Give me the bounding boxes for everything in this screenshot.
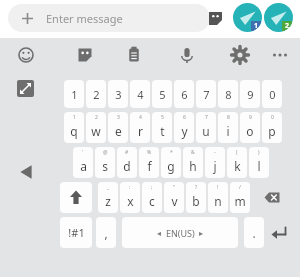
staticText: d xyxy=(123,158,131,174)
staticText: 3 xyxy=(115,87,122,102)
button[interactable]: Shift xyxy=(60,182,92,213)
staticText: EN(US) xyxy=(166,227,195,239)
staticText: 4 xyxy=(139,114,142,121)
button[interactable]: 9 xyxy=(240,80,260,108)
staticText: n xyxy=(214,193,222,209)
button[interactable]: 8 xyxy=(218,80,238,108)
button[interactable]: 0 xyxy=(262,80,282,108)
button[interactable]: More options xyxy=(266,41,294,69)
button[interactable]: 8 xyxy=(218,112,238,143)
button[interactable]: 7 xyxy=(196,80,216,108)
button[interactable]: 6 xyxy=(174,112,194,143)
button[interactable]: / xyxy=(230,182,250,213)
button[interactable]: , xyxy=(96,217,116,248)
staticText: Enter message xyxy=(46,11,123,26)
staticText: e xyxy=(115,123,122,139)
staticText: a xyxy=(80,158,87,174)
staticText: s xyxy=(102,158,108,174)
staticText: ? xyxy=(195,184,198,191)
button[interactable]: Settings xyxy=(226,41,254,69)
button[interactable]: 9 xyxy=(240,112,260,143)
staticText: u xyxy=(202,123,210,139)
button[interactable]: !#1 xyxy=(60,217,92,248)
button[interactable]: 3 xyxy=(108,112,128,143)
staticText: t xyxy=(160,123,165,139)
button[interactable]: Backspace xyxy=(256,182,288,213)
button[interactable]: 1 xyxy=(64,80,84,108)
button[interactable]: Send message 2 xyxy=(264,3,293,32)
button[interactable]: Resize keyboard xyxy=(17,80,34,97)
button[interactable]: 2 xyxy=(86,80,106,108)
button[interactable]: 6 xyxy=(174,80,194,108)
staticText: 8 xyxy=(227,114,230,121)
button[interactable]: - xyxy=(205,147,225,178)
button[interactable]: Clipboard xyxy=(120,41,148,69)
button[interactable]: ! xyxy=(208,182,228,213)
staticText: 1 xyxy=(71,87,78,102)
button[interactable]: 0 xyxy=(262,112,282,143)
staticText: . xyxy=(252,225,256,241)
button[interactable]: & xyxy=(183,147,203,178)
button[interactable]: 5 xyxy=(152,80,172,108)
button[interactable]: 3 xyxy=(108,80,128,108)
button[interactable]: 1 xyxy=(64,112,84,143)
staticText: * xyxy=(170,149,173,156)
button[interactable]: ; xyxy=(142,182,162,213)
button[interactable]: 4 xyxy=(130,80,150,108)
staticText: i xyxy=(226,123,230,139)
staticText: 6 xyxy=(181,87,188,102)
staticText: 1 xyxy=(73,114,76,121)
staticText: c xyxy=(149,193,155,209)
button[interactable]: " xyxy=(164,182,184,213)
staticText: 2 xyxy=(93,87,100,102)
staticText: m xyxy=(234,193,246,209)
button[interactable]: Enter message xyxy=(8,4,210,32)
staticText: g xyxy=(167,158,175,174)
button[interactable]: : xyxy=(120,182,140,213)
button[interactable]: Enter xyxy=(266,217,292,248)
button[interactable]: 4 xyxy=(130,112,150,143)
button[interactable]: 5 xyxy=(152,112,172,143)
button[interactable]: _ xyxy=(98,182,118,213)
button[interactable]: 7 xyxy=(196,112,216,143)
button[interactable]: Send message 1 xyxy=(233,3,262,32)
staticText: l xyxy=(257,158,261,174)
button[interactable]: @ xyxy=(95,147,115,178)
staticText: o xyxy=(246,123,254,139)
staticText: - xyxy=(214,149,216,156)
staticText: _ xyxy=(107,184,110,191)
staticText: z xyxy=(105,193,111,209)
button[interactable]: % xyxy=(139,147,159,178)
button[interactable]: . xyxy=(244,217,264,248)
staticText: ; xyxy=(151,184,153,191)
button[interactable]: ◂ xyxy=(122,217,238,248)
staticText: , xyxy=(104,225,108,241)
staticText: b xyxy=(192,193,200,209)
staticText: ! xyxy=(217,184,219,191)
button[interactable]: * xyxy=(161,147,181,178)
staticText: 5 xyxy=(161,114,164,121)
staticText: 8 xyxy=(225,87,232,102)
staticText: 2 xyxy=(95,114,98,121)
staticText: : xyxy=(129,184,131,191)
button[interactable]: ) xyxy=(249,147,269,178)
button[interactable]: # xyxy=(117,147,137,178)
staticText: 9 xyxy=(249,114,252,121)
staticText: 2 xyxy=(285,21,290,31)
button[interactable]: Stickers xyxy=(203,6,227,30)
button[interactable]: 2 xyxy=(86,112,106,143)
staticText: p xyxy=(268,123,276,139)
button[interactable]: Move cursor left xyxy=(14,160,38,184)
staticText: / xyxy=(239,184,241,191)
staticText: 3 xyxy=(117,114,120,121)
button[interactable]: ? xyxy=(186,182,206,213)
staticText: 0 xyxy=(269,87,276,102)
button[interactable]: ( xyxy=(227,147,247,178)
button[interactable]: Emoji xyxy=(12,41,40,69)
button[interactable]: Sticker xyxy=(71,41,99,69)
button[interactable]: Voice input xyxy=(173,41,201,69)
button[interactable]: ' xyxy=(73,147,93,178)
staticText: " xyxy=(173,184,176,191)
staticText: 6 xyxy=(183,114,186,121)
staticText: f xyxy=(147,158,152,174)
